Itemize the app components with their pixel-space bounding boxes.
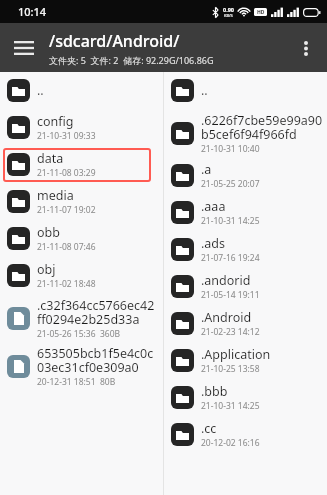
button[interactable]: Menu	[6, 30, 42, 66]
button[interactable]: .bbb	[164, 379, 327, 416]
staticText: 21-02-23 14:12	[201, 326, 260, 338]
staticText: .c32f364cc5766ec42ff0294e2b25d33a	[37, 297, 159, 328]
staticText: data	[37, 150, 64, 167]
staticText: 21-05-25 20:07	[201, 178, 260, 190]
staticText: HD	[257, 9, 265, 16]
staticText: 21-11-02 18:48	[37, 278, 96, 290]
button[interactable]: .Android	[164, 305, 327, 342]
button[interactable]: config	[0, 109, 163, 146]
button[interactable]: data	[0, 146, 163, 183]
staticText: 0.90	[223, 6, 234, 13]
button[interactable]: obj	[0, 257, 163, 294]
button[interactable]: .ads	[164, 231, 327, 268]
button[interactable]: .a	[164, 157, 327, 194]
button[interactable]: .andorid	[164, 268, 327, 305]
staticText: 21-11-07 19:02	[37, 204, 96, 216]
staticText: 21-10-31 09:33	[37, 130, 96, 142]
staticText: .andorid	[201, 272, 251, 289]
staticText: /sdcard/Android/	[49, 30, 180, 52]
staticText: 21-05-14 19:11	[201, 289, 260, 301]
staticText: 21-10-25 13:58	[201, 363, 260, 375]
button[interactable]: .cc	[164, 416, 327, 453]
button[interactable]: ..	[164, 72, 327, 109]
staticText: .ads	[201, 235, 226, 252]
staticText: obj	[37, 261, 56, 278]
button[interactable]: media	[0, 183, 163, 220]
staticText: 20-12-31 18:51 80B	[37, 376, 116, 388]
button[interactable]: .aaa	[164, 194, 327, 231]
button[interactable]: .6226f7cbe59e99a90b5cef6f94f966fd	[164, 109, 327, 157]
staticText: 21-05-26 15:36 360B	[37, 328, 121, 340]
button[interactable]: obb	[0, 220, 163, 257]
staticText: .cc	[201, 420, 217, 437]
staticText: obb	[37, 224, 60, 241]
staticText: 21-10-31 14:25	[201, 215, 260, 227]
staticText: ..	[201, 82, 208, 99]
staticText: 21-10-31 14:25	[201, 400, 260, 412]
staticText: 21-11-08 07:46	[37, 241, 96, 253]
staticText: 10:14	[18, 4, 47, 19]
button[interactable]: 653505bcb1f5e4c0c03ec31cf0e309a0	[0, 342, 163, 390]
staticText: media	[37, 187, 74, 204]
staticText: .bbb	[201, 383, 228, 400]
staticText: config	[37, 113, 74, 130]
staticText: 21-11-08 03:29	[37, 167, 96, 179]
button[interactable]: .Application	[164, 342, 327, 379]
button[interactable]: More options	[289, 31, 323, 65]
staticText: .aaa	[201, 198, 226, 215]
staticText: .a	[201, 161, 212, 178]
staticText: 文件夹: 5 文件: 2 储存: 92.29G/106.86G	[49, 54, 214, 66]
button[interactable]: ..	[0, 72, 163, 109]
staticText: 653505bcb1f5e4c0c03ec31cf0e309a0	[37, 345, 159, 376]
staticText: 21-10-31 10:40	[201, 143, 260, 155]
staticText: 20-12-02 16:16	[201, 437, 260, 449]
staticText: KB/S	[224, 13, 233, 18]
staticText: .Application	[201, 346, 271, 363]
staticText: .6226f7cbe59e99a90b5cef6f94f966fd	[201, 112, 323, 143]
staticText: ..	[37, 82, 44, 99]
button[interactable]: .c32f364cc5766ec42ff0294e2b25d33a	[0, 294, 163, 342]
staticText: 21-07-16 19:24	[201, 252, 260, 264]
staticText: .Android	[201, 309, 252, 326]
